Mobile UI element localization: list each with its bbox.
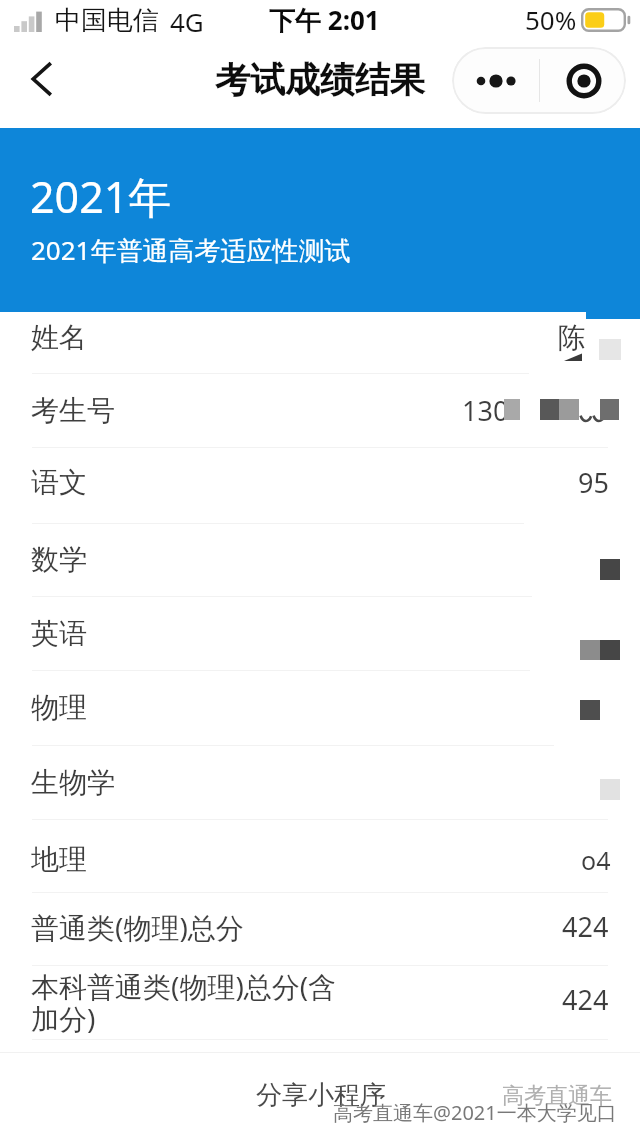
staticText: 2021年 [30,167,172,226]
staticText: 姓名 [31,320,87,355]
staticText: 生物学 [31,765,115,800]
staticText: 英语 [31,616,87,651]
staticText: 4G [170,4,204,39]
staticText: 本科普通类(物理)总分(含 加分) [31,967,337,1038]
staticText: 语文 [31,465,87,500]
staticText: 数学 [31,542,87,577]
staticText: 50% [525,2,577,37]
staticText: 下午 2:01 [269,2,380,38]
staticText: 95 [578,464,609,501]
staticText: 考生号 [31,393,115,428]
staticText: o4 [581,843,611,877]
staticText: 地理 [31,842,87,877]
staticText: 424 [562,981,609,1018]
staticText: 高考直通车@2021一本大学见口 [333,1099,617,1126]
staticText: 2021年普通高考适应性测试 [31,232,351,268]
staticText: 物理 [31,690,87,725]
button[interactable]: More options [452,47,539,114]
staticText: 考试成绩结果 [215,58,425,102]
button[interactable]: 普通类(物理)总分 [0,892,640,965]
button[interactable]: 考生号 [0,373,640,447]
button[interactable]: 语文 [0,447,640,523]
button[interactable]: 生物学 [0,745,640,819]
button[interactable]: 姓名 [0,312,640,373]
button[interactable]: 数学 [0,523,640,596]
staticText: 130 [462,392,509,429]
button[interactable]: 物理 [0,670,640,745]
staticText: 中国电信 [55,4,159,37]
button[interactable]: 英语 [0,596,640,670]
button[interactable]: 地理 [0,819,640,892]
staticText: 分享小程序 [256,1079,386,1112]
button[interactable]: Back [16,53,68,105]
staticText: 普通类(物理)总分 [31,908,244,946]
button[interactable]: 本科普通类(物理)总分(含 加分) [0,965,640,1039]
staticText: 高考直通车 [502,1082,612,1110]
staticText: 陈 [558,320,586,355]
button[interactable]: Close mini program [540,47,626,114]
staticText: 424 [562,908,609,945]
